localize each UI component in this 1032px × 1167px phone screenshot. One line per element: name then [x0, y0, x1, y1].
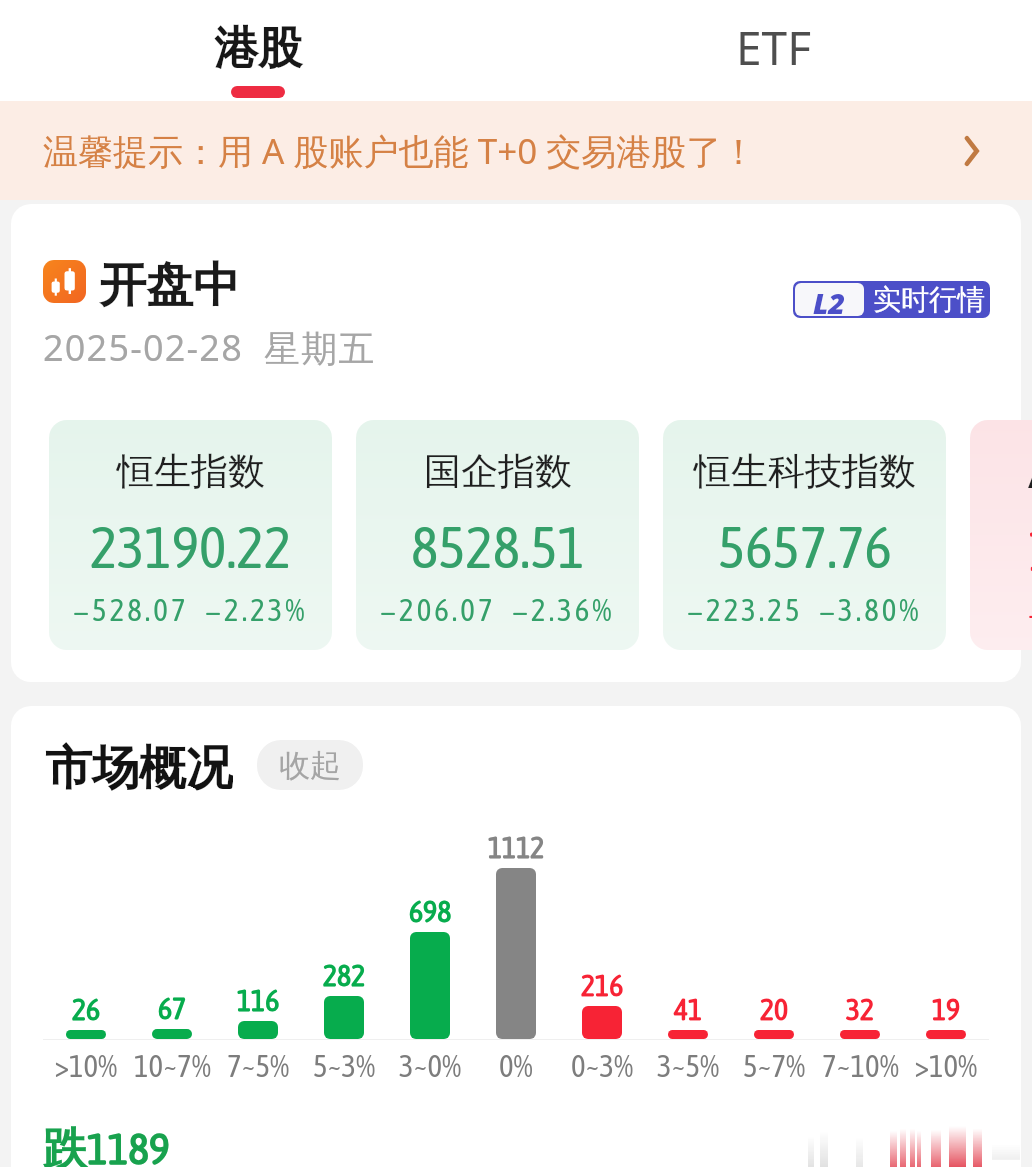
- button[interactable]: 收起: [257, 740, 363, 790]
- staticText: 开盘中: [99, 256, 240, 315]
- staticText: 3~0%: [399, 1048, 462, 1084]
- staticText: −206.07: [380, 592, 496, 628]
- staticText: 41: [674, 992, 703, 1026]
- staticText: 7~5%: [227, 1048, 290, 1084]
- staticText: 市场概况: [45, 739, 233, 791]
- staticText: 1112: [488, 830, 545, 864]
- button[interactable]: A股市场主指数: [970, 420, 1032, 650]
- staticText: 67: [158, 991, 187, 1025]
- staticText: 216: [581, 968, 624, 1002]
- staticText: 7~10%: [822, 1048, 899, 1084]
- staticText: 恒生指数: [117, 448, 265, 495]
- button[interactable]: ETF: [664, 0, 884, 101]
- button[interactable]: 温馨提示：用 A 股账户也能 T+0 交易港股了！: [0, 101, 1032, 200]
- button[interactable]: L2: [793, 281, 990, 318]
- staticText: 19245.30: [1028, 517, 1032, 583]
- staticText: A股市场主指数: [1028, 448, 1032, 498]
- staticText: 国企指数: [424, 448, 572, 495]
- staticText: 19: [932, 992, 961, 1026]
- staticText: >10%: [915, 1048, 978, 1084]
- staticText: 收起: [279, 746, 341, 785]
- staticText: 282: [323, 958, 366, 992]
- other: 查看详情: [955, 135, 987, 167]
- staticText: 26: [72, 992, 101, 1026]
- staticText: −528.07: [73, 592, 189, 628]
- staticText: L2: [813, 283, 846, 316]
- staticText: ETF: [736, 16, 812, 79]
- staticText: 0~3%: [571, 1048, 634, 1084]
- button[interactable]: 国企指数: [356, 420, 639, 650]
- button[interactable]: 恒生指数: [49, 420, 332, 650]
- staticText: 5~3%: [313, 1048, 376, 1084]
- staticText: 5657.76: [718, 514, 892, 580]
- staticText: 5~7%: [743, 1048, 806, 1084]
- staticText: 8528.51: [411, 514, 585, 580]
- staticText: 23190.22: [90, 514, 292, 580]
- button[interactable]: 恒生科技指数: [663, 420, 946, 650]
- staticText: 实时行情: [873, 282, 985, 317]
- staticText: +121.55: [1028, 595, 1032, 631]
- staticText: 20: [760, 992, 789, 1026]
- staticText: >10%: [55, 1048, 118, 1084]
- staticText: 116: [237, 983, 280, 1017]
- staticText: −2.36%: [512, 592, 615, 628]
- staticText: 0%: [499, 1048, 533, 1084]
- staticText: −2.23%: [205, 592, 308, 628]
- staticText: 港股: [214, 21, 302, 76]
- staticText: 跌1189: [43, 1122, 170, 1167]
- staticText: 10~7%: [134, 1048, 211, 1084]
- staticText: −3.80%: [819, 592, 922, 628]
- staticText: 3~5%: [657, 1048, 720, 1084]
- staticText: 2025-02-28 星期五: [43, 323, 376, 372]
- staticText: −223.25: [687, 592, 803, 628]
- staticText: 698: [409, 894, 452, 928]
- button[interactable]: 港股: [148, 0, 368, 101]
- staticText: 恒生科技指数: [694, 448, 916, 495]
- staticText: 32: [846, 992, 875, 1026]
- staticText: 温馨提示：用 A 股账户也能 T+0 交易港股了！: [43, 127, 757, 175]
